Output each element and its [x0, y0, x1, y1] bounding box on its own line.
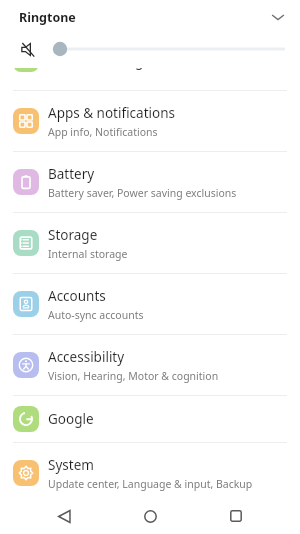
staticText: Internal storage	[48, 247, 128, 261]
staticText: Ringtone	[19, 9, 76, 26]
button[interactable]: Back	[42, 498, 86, 534]
staticText: Vision, Hearing, Motor & cognition	[48, 369, 219, 383]
button[interactable]: System	[0, 443, 300, 503]
staticText: Battery	[48, 165, 95, 183]
button[interactable]: Storage	[0, 213, 300, 273]
button[interactable]	[50, 37, 287, 61]
button[interactable]: Mute	[17, 37, 41, 61]
button[interactable]: Home	[128, 498, 172, 534]
staticText: Apps & notifications	[48, 104, 175, 122]
button[interactable]: Apps & notifications	[0, 91, 300, 151]
staticText: Auto-sync accounts	[48, 308, 144, 322]
button[interactable]: Smart cleaning	[0, 56, 300, 90]
staticText: Update center, Language & input, Backup	[48, 477, 253, 491]
button[interactable]: Google	[0, 396, 300, 442]
staticText: System	[48, 456, 94, 474]
button[interactable]: Battery	[0, 152, 300, 212]
button[interactable]: Accessibility	[0, 335, 300, 395]
staticText: Smart cleaning	[48, 52, 144, 70]
button[interactable]: Ringtone	[0, 0, 300, 34]
staticText: Accounts	[48, 287, 106, 305]
staticText: Storage	[48, 226, 98, 244]
staticText: Accessibility	[48, 348, 125, 366]
button[interactable]: Accounts	[0, 274, 300, 334]
staticText: Google	[48, 410, 94, 428]
button[interactable]: Collapse	[262, 1, 294, 33]
button[interactable]: Recent apps	[214, 498, 258, 534]
staticText: Battery saver, Power saving exclusions	[48, 186, 237, 200]
staticText: App info, Notifications	[48, 125, 158, 139]
